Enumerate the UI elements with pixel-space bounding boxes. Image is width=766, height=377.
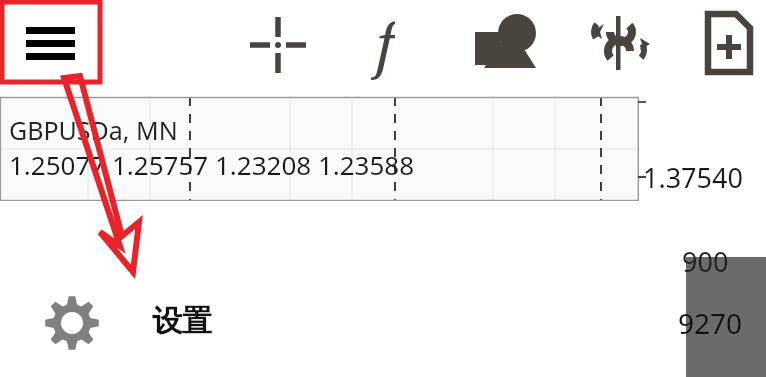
button[interactable]: Indicators [352,6,418,82]
button[interactable]: Trade [580,8,656,80]
button[interactable]: New chart [698,8,760,80]
button[interactable]: Crosshair [244,12,312,78]
staticText: ƒ [371,4,395,80]
button[interactable]: Menu [2,2,100,82]
staticText: 1.37540 [643,159,743,196]
staticText: GBPUSDa, MN [9,113,178,147]
button[interactable]: 设置 [0,283,686,363]
button[interactable]: Objects [466,10,542,78]
staticText: 1.25077 1.25757 1.23208 1.23588 [9,147,415,182]
staticText: 900 [682,243,729,280]
staticText: 设置 [152,302,212,340]
staticText: 9270 [678,304,743,342]
